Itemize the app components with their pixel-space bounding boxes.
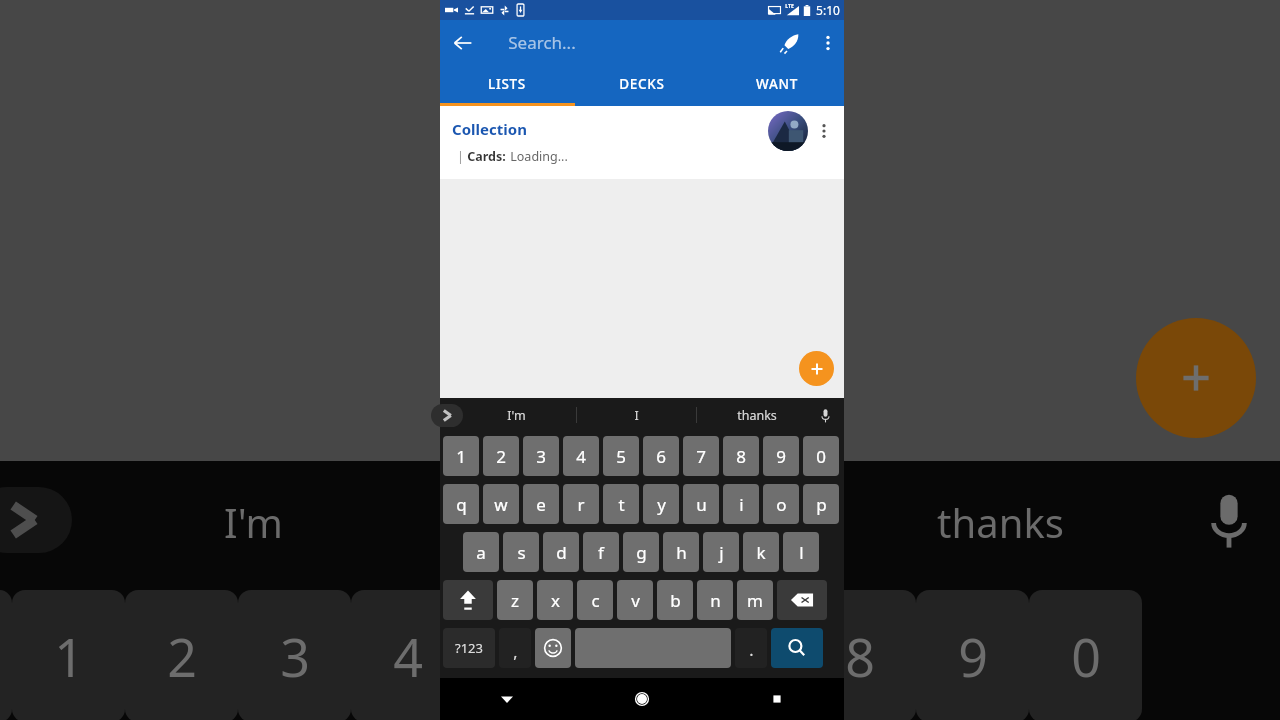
- button[interactable]: 1: [443, 436, 479, 476]
- button[interactable]: Expand suggestions: [0, 487, 72, 553]
- button[interactable]: Collection: [440, 106, 844, 179]
- staticText: Loading...: [510, 148, 568, 165]
- staticText: i: [739, 493, 744, 516]
- staticText: LTE: [785, 3, 794, 10]
- button[interactable]: List options: [808, 111, 840, 151]
- button[interactable]: o: [763, 484, 799, 524]
- staticText: 6: [619, 621, 649, 692]
- button[interactable]: Back: [440, 678, 574, 720]
- button[interactable]: Shift: [443, 580, 493, 620]
- button[interactable]: i: [723, 484, 759, 524]
- button[interactable]: 6: [643, 436, 679, 476]
- button[interactable]: k: [743, 532, 779, 572]
- staticText: h: [676, 541, 687, 564]
- button[interactable]: d: [543, 532, 579, 572]
- button[interactable]: w: [483, 484, 519, 524]
- staticText: Cards:: [467, 148, 506, 165]
- button[interactable]: r: [563, 484, 599, 524]
- button[interactable]: q: [443, 484, 479, 524]
- staticText: b: [670, 589, 681, 612]
- button[interactable]: ?123: [443, 628, 495, 668]
- staticText: p: [816, 493, 827, 516]
- staticText: WANT: [756, 75, 798, 93]
- staticText: 2: [167, 621, 197, 692]
- button[interactable]: 9: [763, 436, 799, 476]
- button[interactable]: e: [523, 484, 559, 524]
- staticText: 3: [536, 445, 546, 468]
- button[interactable]: Space: [575, 628, 731, 668]
- staticText: n: [710, 589, 721, 612]
- staticText: |: [457, 148, 464, 165]
- button[interactable]: y: [643, 484, 679, 524]
- button[interactable]: j: [703, 532, 739, 572]
- staticText: 2: [496, 445, 506, 468]
- button[interactable]: Recent apps: [709, 678, 844, 720]
- button[interactable]: thanks: [697, 398, 816, 432]
- staticText: 0: [1071, 621, 1101, 692]
- button[interactable]: l: [783, 532, 819, 572]
- button[interactable]: More options: [811, 26, 844, 59]
- staticText: Search...: [508, 31, 576, 54]
- button[interactable]: Voice input: [813, 403, 837, 427]
- button[interactable]: 7: [683, 436, 719, 476]
- staticText: c: [591, 589, 600, 612]
- staticText: 9: [958, 621, 988, 692]
- button[interactable]: 2: [483, 436, 519, 476]
- button[interactable]: Quick add: [767, 21, 811, 65]
- button[interactable]: Search...: [486, 20, 767, 65]
- staticText: r: [577, 493, 585, 516]
- button[interactable]: DECKS: [574, 65, 709, 103]
- staticText: 5:10: [816, 2, 840, 18]
- button[interactable]: Emoji: [535, 628, 571, 668]
- staticText: 1: [456, 445, 466, 468]
- button[interactable]: More suggestions: [431, 404, 463, 427]
- staticText: thanks: [937, 495, 1064, 549]
- button[interactable]: 8: [723, 436, 759, 476]
- button[interactable]: 3: [523, 436, 559, 476]
- button[interactable]: g: [623, 532, 659, 572]
- button[interactable]: .: [735, 628, 767, 668]
- button[interactable]: LISTS: [440, 65, 574, 103]
- button[interactable]: ,: [499, 628, 531, 668]
- staticText: 7: [696, 445, 706, 468]
- button[interactable]: 4: [563, 436, 599, 476]
- button[interactable]: p: [803, 484, 839, 524]
- button[interactable]: I'm: [456, 398, 576, 432]
- button[interactable]: Home: [574, 678, 709, 720]
- button[interactable]: I: [577, 398, 696, 432]
- button[interactable]: f: [583, 532, 619, 572]
- button[interactable]: s: [503, 532, 539, 572]
- button[interactable]: 0: [803, 436, 839, 476]
- staticText: v: [631, 589, 640, 612]
- button[interactable]: c: [577, 580, 613, 620]
- button[interactable]: Profile photo: [768, 111, 808, 151]
- button[interactable]: u: [683, 484, 719, 524]
- staticText: 9: [776, 445, 786, 468]
- button[interactable]: v: [617, 580, 653, 620]
- staticText: 8: [736, 445, 746, 468]
- button[interactable]: Add item: [799, 351, 834, 386]
- button[interactable]: WANT: [709, 65, 844, 103]
- staticText: s: [517, 541, 526, 564]
- staticText: LISTS: [488, 75, 526, 93]
- staticText: z: [511, 589, 519, 612]
- staticText: 5: [616, 445, 626, 468]
- button[interactable]: t: [603, 484, 639, 524]
- button[interactable]: 5: [603, 436, 639, 476]
- staticText: 4: [576, 445, 586, 468]
- button[interactable]: b: [657, 580, 693, 620]
- button[interactable]: Backspace: [777, 580, 827, 620]
- button[interactable]: x: [537, 580, 573, 620]
- button[interactable]: z: [497, 580, 533, 620]
- button[interactable]: Search: [771, 628, 823, 668]
- staticText: ,: [513, 641, 518, 663]
- staticText: m: [747, 589, 763, 612]
- button[interactable]: Back: [440, 20, 486, 65]
- staticText: 8: [845, 621, 875, 692]
- button[interactable]: m: [737, 580, 773, 620]
- button[interactable]: h: [663, 532, 699, 572]
- button[interactable]: n: [697, 580, 733, 620]
- staticText: I'm: [224, 495, 283, 549]
- button[interactable]: a: [463, 532, 499, 572]
- staticText: t: [618, 493, 625, 516]
